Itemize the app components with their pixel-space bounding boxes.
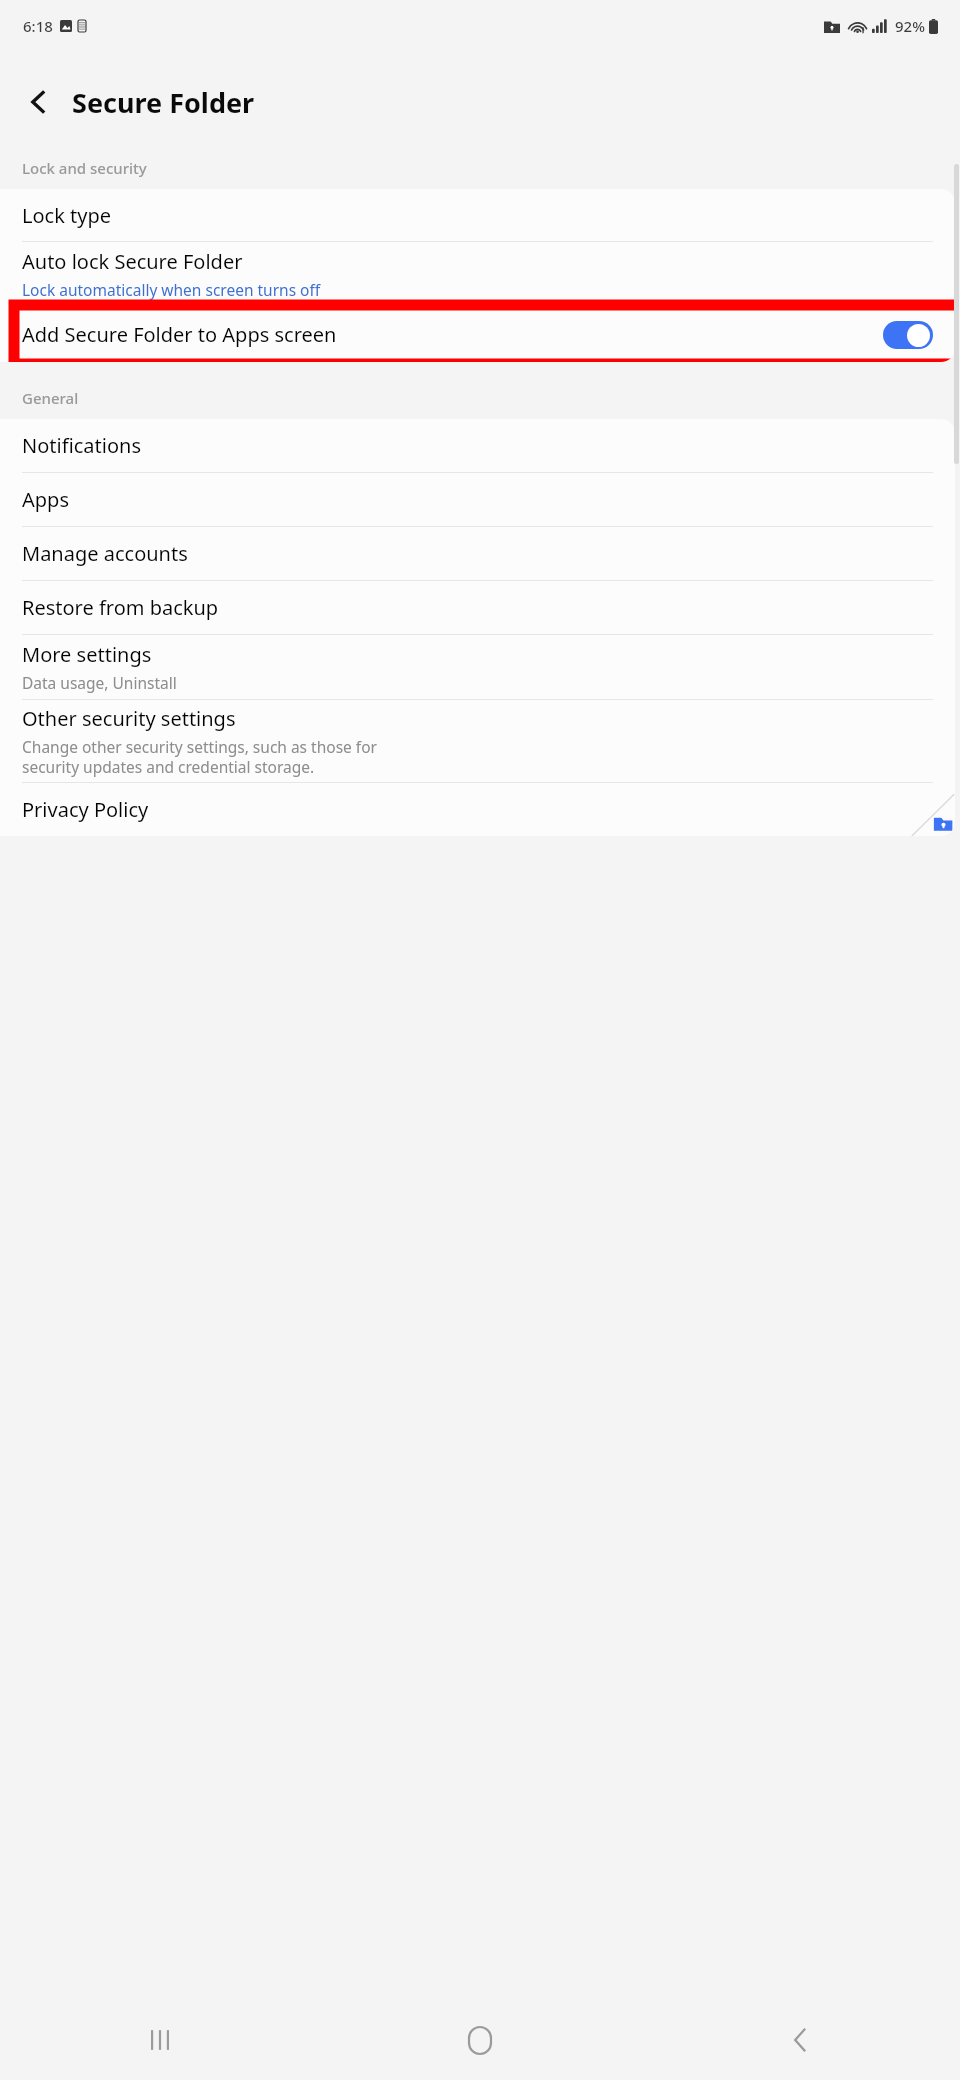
button[interactable]: Restore from backup — [0, 581, 955, 634]
staticText: Restore from backup — [22, 594, 219, 621]
button[interactable]: Other security settings — [0, 700, 955, 782]
staticText: Other security settings — [22, 705, 236, 732]
button[interactable]: Add Secure Folder to Apps screen toggle — [883, 321, 933, 349]
staticText: Lock type — [22, 202, 112, 229]
staticText: Privacy Policy — [22, 796, 149, 823]
staticText: Lock and security — [22, 158, 147, 178]
staticText: Add Secure Folder to Apps screen — [22, 321, 883, 348]
button[interactable]: Back — [12, 75, 66, 129]
staticText: Data usage, Uninstall — [22, 672, 177, 693]
button[interactable]: Recents — [0, 2000, 320, 2080]
button[interactable]: Lock type — [0, 189, 955, 241]
staticText: Manage accounts — [22, 540, 188, 567]
button[interactable]: Home — [320, 2000, 640, 2080]
staticText: 6:18 — [23, 16, 53, 36]
staticText: Change other security settings, such as … — [22, 736, 377, 778]
button[interactable]: Add Secure Folder to Apps screen — [0, 307, 955, 362]
staticText: Secure Folder — [72, 84, 255, 121]
button[interactable]: Manage accounts — [0, 527, 955, 580]
staticText: More settings — [22, 641, 152, 668]
staticText: Lock automatically when screen turns off — [22, 279, 321, 300]
button[interactable]: Apps — [0, 473, 955, 526]
staticText: General — [22, 388, 79, 408]
staticText: Notifications — [22, 432, 141, 459]
button[interactable]: Notifications — [0, 419, 955, 472]
button[interactable]: Privacy Policy — [0, 783, 955, 836]
button[interactable]: More settings — [0, 635, 955, 699]
button[interactable]: Back — [640, 2000, 960, 2080]
staticText: Apps — [22, 486, 69, 513]
staticText: Auto lock Secure Folder — [22, 248, 243, 275]
button[interactable]: Auto lock Secure Folder — [0, 242, 955, 306]
staticText: 92% — [895, 16, 925, 36]
